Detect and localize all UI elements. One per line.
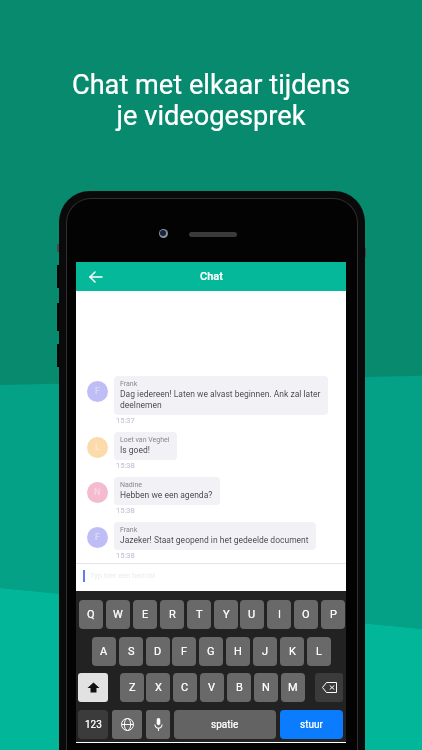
- staticText: L: [316, 645, 322, 658]
- staticText: Loet van Veghel: [120, 436, 170, 444]
- staticText: S: [128, 645, 135, 658]
- button[interactable]: F: [172, 637, 196, 666]
- staticText: Typ hier een bericht: [90, 571, 156, 580]
- button[interactable]: Voice input: [146, 710, 170, 739]
- staticText: 15:38: [116, 506, 135, 515]
- staticText: T: [196, 608, 203, 621]
- button[interactable]: W: [106, 600, 130, 629]
- button[interactable]: L: [307, 637, 331, 666]
- staticText: Frank: [120, 526, 138, 534]
- staticText: U: [248, 608, 256, 621]
- button[interactable]: C: [173, 673, 197, 702]
- staticText: 15:38: [116, 461, 135, 470]
- staticText: G: [207, 645, 215, 658]
- staticText: V: [208, 681, 216, 694]
- staticText: D: [154, 645, 162, 658]
- staticText: P: [330, 608, 337, 621]
- button[interactable]: spatie: [174, 710, 276, 739]
- button[interactable]: J: [253, 637, 277, 666]
- button[interactable]: I: [267, 600, 291, 629]
- staticText: Z: [129, 681, 136, 694]
- staticText: M: [288, 681, 298, 694]
- button[interactable]: O: [294, 600, 318, 629]
- button[interactable]: V: [200, 673, 224, 702]
- staticText: spatie: [211, 719, 239, 731]
- button[interactable]: M: [281, 673, 305, 702]
- staticText: Chat: [200, 270, 223, 283]
- button[interactable]: Shift: [78, 673, 108, 702]
- button[interactable]: stuur: [280, 710, 343, 739]
- staticText: F: [95, 532, 100, 543]
- button[interactable]: Back: [84, 265, 108, 289]
- staticText: X: [155, 681, 162, 694]
- staticText: Chat met elkaar tijdens je videogesprek: [0, 69, 422, 132]
- button[interactable]: G: [199, 637, 223, 666]
- button[interactable]: K: [280, 637, 304, 666]
- button[interactable]: X: [146, 673, 170, 702]
- staticText: W: [113, 608, 123, 621]
- staticText: R: [169, 608, 176, 621]
- button[interactable]: A: [92, 637, 116, 666]
- staticText: O: [302, 608, 310, 621]
- button[interactable]: Y: [214, 600, 238, 629]
- staticText: stuur: [300, 719, 323, 731]
- staticText: I: [278, 608, 281, 621]
- button[interactable]: 123: [78, 710, 108, 739]
- staticText: Frank: [120, 380, 138, 388]
- button[interactable]: B: [227, 673, 251, 702]
- button[interactable]: T: [187, 600, 211, 629]
- staticText: Nadine: [120, 481, 143, 489]
- button[interactable]: S: [119, 637, 143, 666]
- staticText: 15:37: [116, 416, 135, 425]
- button[interactable]: H: [226, 637, 250, 666]
- staticText: F: [181, 645, 188, 658]
- staticText: Q: [87, 608, 95, 621]
- staticText: 15:38: [116, 551, 135, 560]
- staticText: N: [262, 681, 270, 694]
- button[interactable]: P: [321, 600, 345, 629]
- button[interactable]: N: [254, 673, 278, 702]
- button[interactable]: D: [146, 637, 170, 666]
- button[interactable]: Q: [79, 600, 103, 629]
- staticText: F: [95, 386, 100, 397]
- staticText: 123: [85, 719, 102, 731]
- staticText: B: [236, 681, 243, 694]
- staticText: J: [262, 645, 269, 658]
- staticText: L: [95, 442, 100, 453]
- button[interactable]: U: [240, 600, 264, 629]
- staticText: Jazeker! Staat geopend in het gedeelde d…: [120, 535, 309, 545]
- button[interactable]: Backspace: [315, 673, 343, 702]
- staticText: A: [100, 645, 108, 658]
- staticText: N: [94, 487, 101, 498]
- staticText: H: [234, 645, 242, 658]
- button[interactable]: E: [133, 600, 157, 629]
- staticText: Hebben we een agenda?: [120, 490, 213, 500]
- staticText: Dag iedereen! Laten we alvast beginnen. …: [120, 389, 321, 410]
- staticText: K: [289, 645, 296, 658]
- button[interactable]: Z: [120, 673, 144, 702]
- button[interactable]: Change language: [112, 710, 142, 739]
- button[interactable]: R: [160, 600, 184, 629]
- staticText: Is goed!: [120, 445, 150, 455]
- staticText: Y: [223, 608, 230, 621]
- staticText: E: [142, 608, 149, 621]
- staticText: C: [181, 681, 189, 694]
